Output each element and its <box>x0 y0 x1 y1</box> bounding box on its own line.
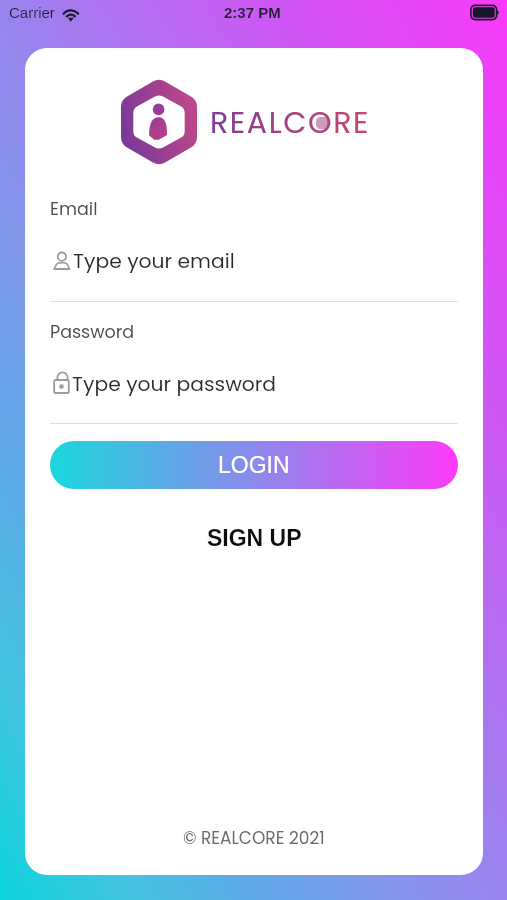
staticText: SIGN UP <box>207 525 302 551</box>
staticText: Email <box>50 197 98 222</box>
staticText: 2:37 PM <box>224 4 281 21</box>
staticText: © REALCORE 2021 <box>183 826 325 850</box>
staticText: Type your email <box>73 247 235 275</box>
staticText: LOGIN <box>218 452 290 478</box>
staticText: REALCORE <box>210 102 370 144</box>
other: Battery full <box>470 5 500 21</box>
button[interactable]: LOGIN <box>50 441 458 489</box>
staticText: Carrier <box>9 4 55 21</box>
staticText: Password <box>50 320 135 345</box>
staticText: Type your password <box>72 370 277 398</box>
button[interactable]: SIGN UP <box>25 518 483 558</box>
other: Wi-Fi signal <box>61 5 82 21</box>
